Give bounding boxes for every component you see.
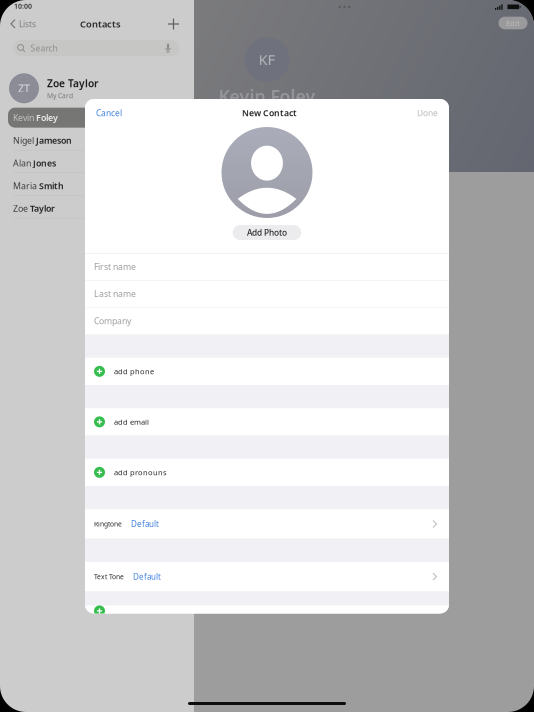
button[interactable]: ZT [0,70,194,106]
staticText: Cancel [96,107,122,119]
staticText: Default [131,518,159,529]
staticText: Text Tone [94,572,124,581]
button[interactable]: Edit [498,17,527,29]
button[interactable]: Add Contact [165,15,182,32]
staticText: Default [133,571,161,582]
button[interactable]: Done [406,100,449,126]
button[interactable]: Company [85,307,449,334]
staticText: First name [94,261,136,273]
button[interactable]: Cancel [85,100,133,126]
staticText: Taylor [30,202,55,214]
staticText: Kevin Foley [218,84,315,108]
button[interactable]: Text Tone [85,562,449,591]
staticText: Jameson [36,134,72,146]
staticText: Add Photo [247,227,287,238]
staticText: 10:00 [14,1,32,11]
staticText: Foley [36,112,58,124]
staticText: Maria [13,180,39,192]
button[interactable]: Add Photo [233,225,301,240]
staticText: Zoe Taylor [47,76,98,90]
staticText: Smith [39,180,64,192]
staticText: add email [114,417,149,427]
staticText: My Card [47,91,73,100]
button[interactable]: add phone [85,358,449,385]
button[interactable]: Nigel [0,129,194,152]
button[interactable]: First name [85,253,449,280]
button[interactable]: Last name [85,280,449,307]
staticText: Kevin [13,112,36,124]
staticText: Edit [506,18,520,28]
staticText: Search [30,42,57,54]
button[interactable]: add pronouns [85,459,449,486]
button[interactable]: Zoe [0,197,194,220]
button[interactable]: Ringtone [85,509,449,539]
button[interactable]: Search [13,40,179,56]
staticText: ZT [18,81,30,95]
staticText: Zoe [13,202,30,214]
staticText: Company [94,315,131,327]
button[interactable]: Maria [0,174,194,197]
staticText: New Contact [242,107,297,119]
staticText: KF [258,50,275,70]
staticText: Lists [19,18,36,30]
button[interactable]: Alan [0,152,194,174]
staticText: add pronouns [114,467,167,477]
staticText: Done [417,107,438,119]
button[interactable]: Lists [10,15,36,33]
staticText: Ringtone [94,519,122,528]
staticText: Alan [13,157,33,169]
staticText: Last name [94,288,136,300]
staticText: add phone [114,366,154,376]
staticText: Nigel [13,134,36,146]
staticText: Jones [33,157,56,169]
staticText: Contacts [80,18,121,30]
button[interactable]: add email [85,408,449,435]
button[interactable]: Kevin [0,106,194,129]
